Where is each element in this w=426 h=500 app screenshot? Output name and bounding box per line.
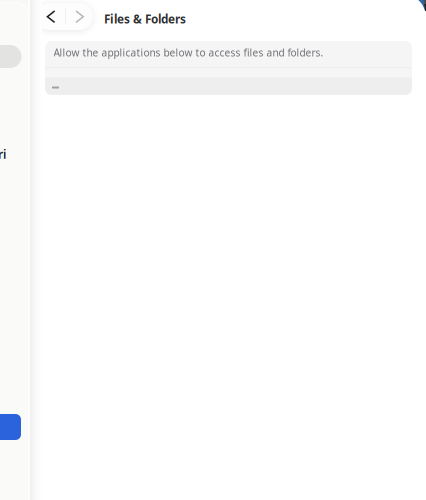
staticText: Allow the applications below to access f…	[53, 46, 323, 59]
staticText: ri	[0, 146, 6, 162]
button[interactable]: Forward	[65, 3, 93, 30]
button[interactable]: Back	[36, 3, 65, 30]
staticText: Files & Folders	[104, 11, 186, 27]
